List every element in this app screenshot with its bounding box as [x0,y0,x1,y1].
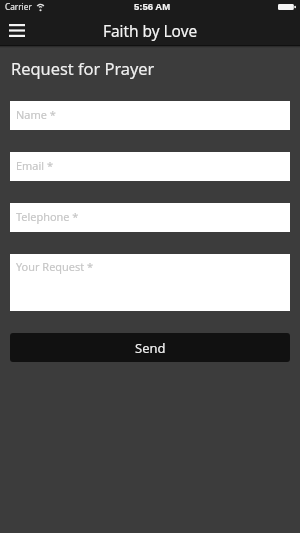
staticText: Your Request * [16,259,94,274]
other: Battery full [278,4,296,10]
button[interactable]: Your Request * [10,254,290,311]
staticText: Email * [16,158,53,173]
staticText: Name * [16,107,56,122]
staticText: Send [135,339,166,357]
button[interactable]: Name * [10,101,290,130]
button[interactable]: Email * [10,152,290,181]
other: Wi-Fi signal [35,2,46,12]
button[interactable]: Open navigation menu [0,16,34,45]
button[interactable]: Telephone * [10,203,290,232]
staticText: Faith by Love [103,20,198,41]
staticText: Request for Prayer [11,57,155,79]
staticText: Carrier [5,1,32,12]
staticText: 5:56 AM [134,1,171,12]
button[interactable]: Send [10,333,290,362]
staticText: Telephone * [16,209,79,224]
